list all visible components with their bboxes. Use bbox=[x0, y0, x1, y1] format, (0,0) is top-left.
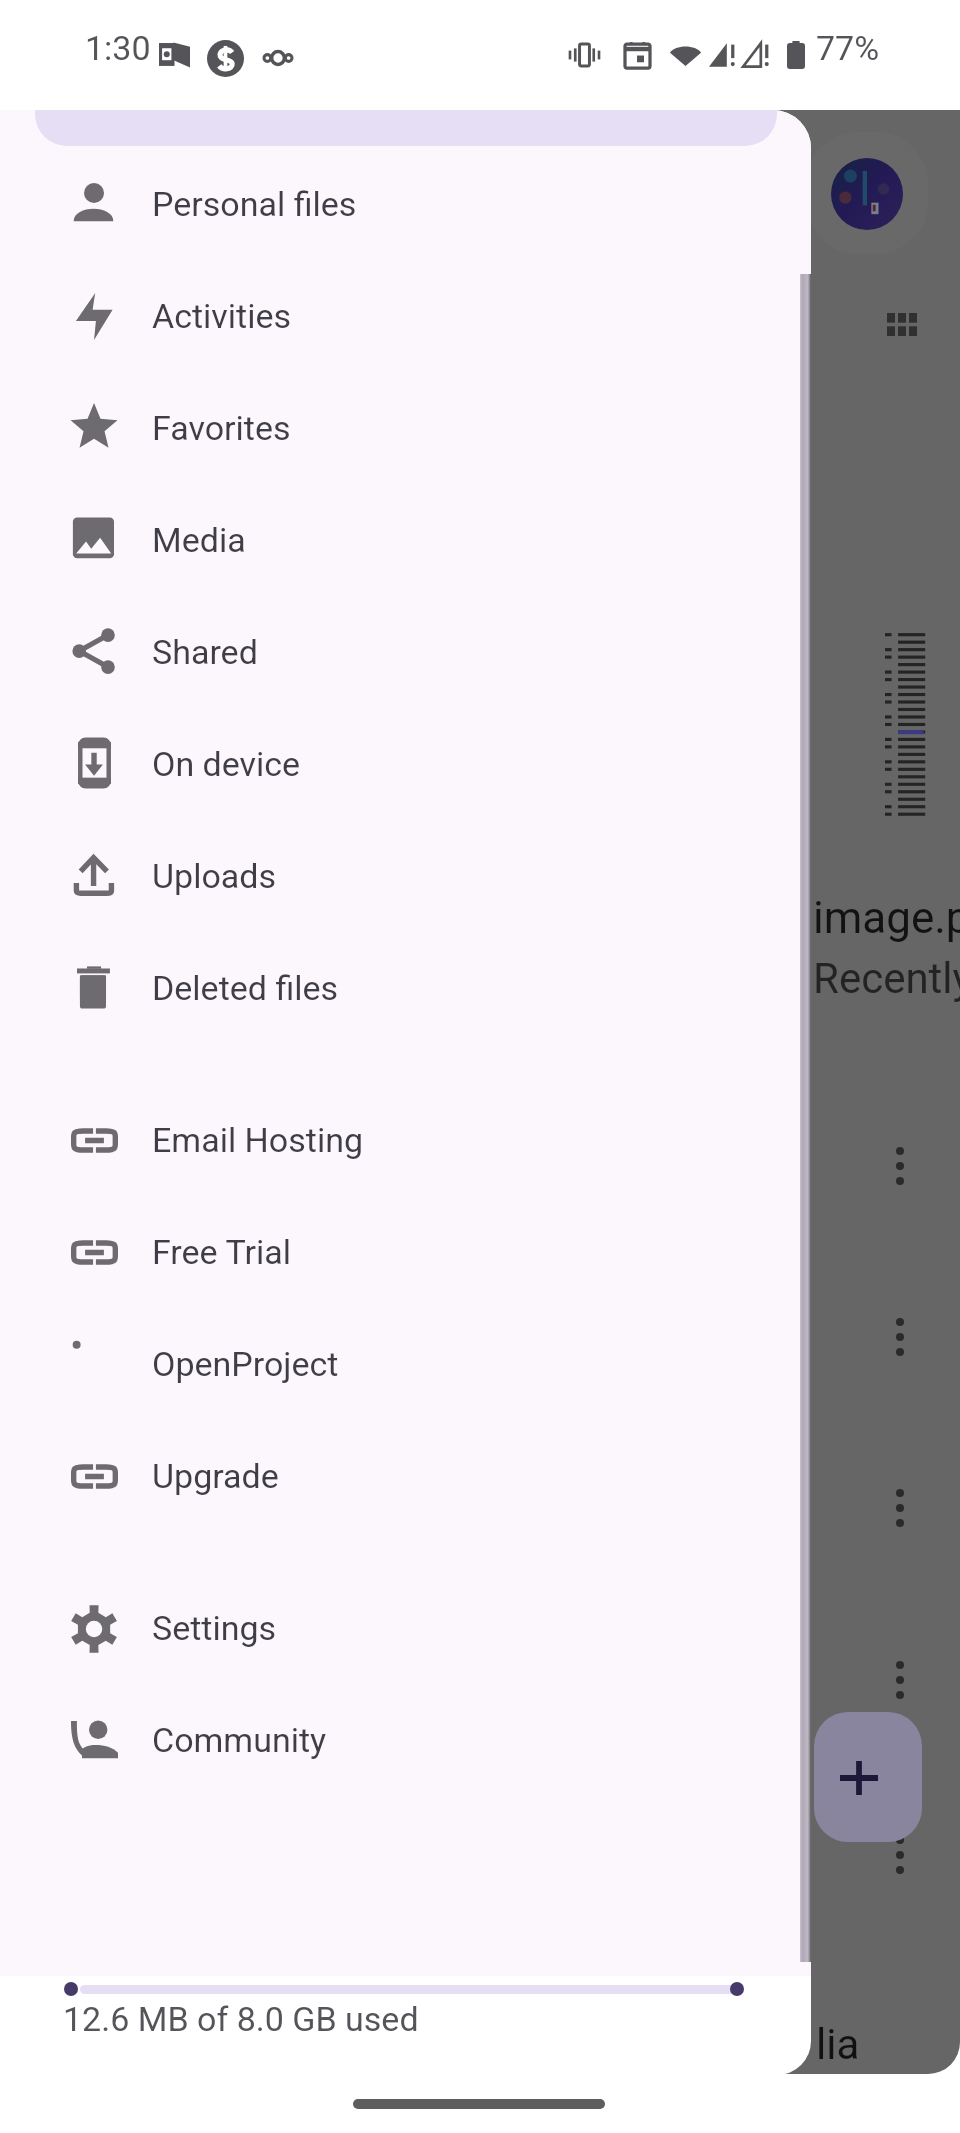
button[interactable]: Personal files bbox=[0, 148, 811, 260]
staticText: Uploads bbox=[152, 856, 277, 896]
button[interactable]: Add bbox=[814, 1712, 922, 1842]
staticText: image.p bbox=[813, 892, 960, 944]
staticText: Free Trial bbox=[152, 1232, 291, 1272]
staticText: Shared bbox=[152, 632, 258, 672]
button[interactable]: On device bbox=[0, 708, 811, 820]
button[interactable]: Deleted files bbox=[0, 932, 811, 1044]
button[interactable]: More options bbox=[896, 1836, 904, 1874]
staticText: Media bbox=[152, 520, 246, 560]
button[interactable]: Account bbox=[831, 158, 903, 230]
button[interactable]: Community bbox=[0, 1684, 811, 1796]
staticText: 1:30 bbox=[85, 28, 151, 68]
staticText: Recently bbox=[813, 954, 960, 1003]
staticText: lia bbox=[816, 2020, 860, 2069]
button[interactable]: OpenProject bbox=[0, 1308, 811, 1420]
button[interactable]: Uploads bbox=[0, 820, 811, 932]
staticText: Settings bbox=[152, 1608, 277, 1648]
staticText: On device bbox=[152, 744, 301, 784]
button[interactable]: Activities bbox=[0, 260, 811, 372]
button[interactable]: Settings bbox=[0, 1572, 811, 1684]
staticText: Community bbox=[152, 1720, 327, 1760]
button[interactable]: More options bbox=[896, 1661, 904, 1699]
button[interactable]: More options bbox=[896, 1318, 904, 1356]
button[interactable]: Switch layout bbox=[887, 313, 917, 336]
button[interactable]: Email Hosting bbox=[0, 1084, 811, 1196]
staticText: OpenProject bbox=[152, 1344, 339, 1384]
button[interactable]: Media bbox=[0, 484, 811, 596]
staticText: 77% bbox=[816, 28, 880, 68]
staticText: Favorites bbox=[152, 408, 291, 448]
button[interactable]: More options bbox=[896, 1489, 904, 1527]
button[interactable]: Shared bbox=[0, 596, 811, 708]
staticText: Activities bbox=[152, 296, 292, 336]
staticText: 12.6 MB of 8.0 GB used bbox=[63, 1999, 419, 2039]
button[interactable]: More options bbox=[896, 1147, 904, 1185]
staticText: Email Hosting bbox=[152, 1120, 364, 1160]
button[interactable]: Favorites bbox=[0, 372, 811, 484]
button[interactable]: Free Trial bbox=[0, 1196, 811, 1308]
button[interactable]: Upgrade bbox=[0, 1420, 811, 1532]
staticText: Upgrade bbox=[152, 1456, 279, 1496]
staticText: Deleted files bbox=[152, 968, 339, 1008]
staticText: Personal files bbox=[152, 184, 357, 224]
